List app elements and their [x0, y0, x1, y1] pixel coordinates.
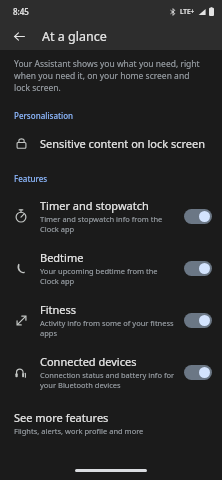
- staticText: See more features: [14, 410, 109, 425]
- button[interactable]: Toggle: [184, 261, 212, 276]
- staticText: 8:45: [13, 6, 29, 17]
- staticText: LTE+: [180, 7, 195, 16]
- button[interactable]: Toggle: [184, 365, 212, 380]
- button[interactable]: Sensitive content on lock screen: [0, 127, 222, 159]
- staticText: Features: [14, 173, 48, 184]
- staticText: Sensitive content on lock screen: [40, 136, 206, 151]
- staticText: Connected devices: [40, 354, 137, 369]
- button[interactable]: Fitness: [0, 294, 222, 346]
- staticText: Bedtime: [40, 250, 84, 265]
- button[interactable]: Toggle: [184, 209, 212, 224]
- button[interactable]: Bedtime: [0, 242, 222, 294]
- staticText: Connection status and battery info for y…: [40, 370, 178, 390]
- staticText: Fitness: [40, 302, 77, 317]
- staticText: Timer and stopwatch info from the Clock …: [40, 214, 178, 234]
- button[interactable]: Toggle: [184, 313, 212, 328]
- staticText: Personalisation: [14, 110, 74, 121]
- button[interactable]: Back: [8, 25, 30, 47]
- staticText: Flights, alerts, work profile and more: [14, 426, 144, 436]
- button[interactable]: See more features: [0, 404, 222, 442]
- staticText: Timer and stopwatch: [40, 198, 149, 213]
- button[interactable]: Timer and stopwatch: [0, 190, 222, 242]
- staticText: At a glance: [42, 28, 107, 45]
- staticText: Activity info from some of your fitness …: [40, 318, 178, 338]
- staticText: Your Assistant shows you what you need, …: [14, 58, 206, 94]
- staticText: Your upcoming bedtime from the Clock app: [40, 266, 178, 286]
- button[interactable]: Connected devices: [0, 346, 222, 398]
